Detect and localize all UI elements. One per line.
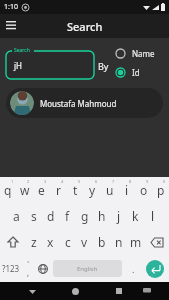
button[interactable]: x bbox=[42, 229, 59, 255]
button[interactable]: a bbox=[8, 203, 25, 229]
button[interactable]: Moustafa Mahmoud bbox=[6, 88, 163, 118]
staticText: t bbox=[73, 182, 78, 198]
staticText: c bbox=[65, 234, 71, 250]
staticText: 9 bbox=[146, 179, 149, 184]
button[interactable]: 2 bbox=[16, 177, 33, 203]
staticText: ° bbox=[27, 259, 30, 267]
button[interactable]: Back bbox=[19, 282, 46, 300]
staticText: r bbox=[56, 182, 61, 198]
staticText: 0 bbox=[163, 179, 166, 184]
staticText: u bbox=[106, 182, 114, 198]
button[interactable]: Open navigation menu bbox=[0, 15, 22, 37]
staticText: h bbox=[98, 208, 106, 224]
button[interactable]: Recent apps bbox=[105, 282, 133, 300]
staticText: b bbox=[98, 234, 106, 250]
staticText: y bbox=[89, 182, 96, 198]
staticText: o bbox=[140, 182, 148, 198]
button[interactable]: m bbox=[127, 229, 144, 255]
button[interactable]: Period bbox=[125, 255, 141, 282]
staticText: a bbox=[13, 208, 20, 224]
staticText: 7 bbox=[112, 179, 115, 184]
button[interactable]: Change keyboard language bbox=[35, 255, 50, 282]
staticText: ?123 bbox=[2, 263, 20, 274]
button[interactable]: z bbox=[25, 229, 42, 255]
staticText: q bbox=[4, 182, 12, 198]
staticText: 5 bbox=[78, 179, 81, 184]
button[interactable]: c bbox=[59, 229, 76, 255]
button[interactable]: 1 bbox=[0, 177, 16, 203]
button[interactable]: 3 bbox=[33, 177, 50, 203]
staticText: d bbox=[47, 208, 55, 224]
button[interactable]: g bbox=[76, 203, 93, 229]
staticText: . bbox=[132, 263, 135, 275]
staticText: English bbox=[77, 265, 98, 273]
button[interactable]: Backspace bbox=[144, 229, 169, 255]
staticText: l bbox=[151, 208, 155, 224]
button[interactable]: 7 bbox=[101, 177, 118, 203]
button[interactable]: Id bbox=[115, 67, 140, 78]
staticText: v bbox=[81, 234, 88, 250]
button[interactable]: f bbox=[59, 203, 76, 229]
staticText: s bbox=[31, 208, 37, 224]
button[interactable]: English bbox=[53, 260, 122, 277]
button[interactable]: b bbox=[93, 229, 110, 255]
staticText: , bbox=[27, 267, 30, 278]
staticText: k bbox=[132, 208, 139, 224]
staticText: Name bbox=[132, 48, 155, 59]
staticText: Id bbox=[132, 67, 140, 78]
button[interactable] bbox=[6, 51, 94, 79]
staticText: i bbox=[125, 182, 129, 198]
staticText: 2 bbox=[27, 179, 30, 184]
button[interactable]: Name bbox=[115, 48, 155, 59]
staticText: w bbox=[20, 182, 30, 198]
staticText: By bbox=[98, 60, 109, 72]
button[interactable]: v bbox=[76, 229, 93, 255]
staticText: x bbox=[47, 234, 54, 250]
staticText: e bbox=[38, 182, 45, 198]
staticText: 8 bbox=[129, 179, 132, 184]
button[interactable]: ?123 bbox=[0, 255, 22, 282]
staticText: jH bbox=[14, 60, 22, 71]
button[interactable]: Home bbox=[61, 282, 89, 300]
button[interactable]: j bbox=[110, 203, 127, 229]
staticText: 1:10 bbox=[4, 2, 18, 12]
button[interactable]: 4 bbox=[50, 177, 67, 203]
button[interactable]: 9 bbox=[135, 177, 152, 203]
button[interactable]: 6 bbox=[84, 177, 101, 203]
staticText: Search bbox=[14, 47, 30, 54]
staticText: m bbox=[130, 234, 142, 250]
button[interactable]: k bbox=[127, 203, 144, 229]
button[interactable]: d bbox=[42, 203, 59, 229]
button[interactable]: Switch keyboard bbox=[133, 282, 161, 300]
staticText: z bbox=[31, 234, 37, 250]
staticText: 3 bbox=[44, 179, 47, 184]
staticText: g bbox=[81, 208, 89, 224]
button[interactable]: h bbox=[93, 203, 110, 229]
staticText: 1 bbox=[11, 179, 14, 184]
staticText: p bbox=[157, 182, 165, 198]
button[interactable]: Enter bbox=[141, 255, 169, 282]
staticText: j bbox=[117, 208, 121, 224]
staticText: 6 bbox=[95, 179, 98, 184]
button[interactable]: Comma bbox=[22, 255, 35, 282]
staticText: n bbox=[115, 234, 123, 250]
button[interactable]: 5 bbox=[67, 177, 84, 203]
button[interactable]: 0 bbox=[152, 177, 169, 203]
button[interactable]: s bbox=[25, 203, 42, 229]
staticText: f bbox=[65, 208, 70, 224]
button[interactable]: n bbox=[110, 229, 127, 255]
button[interactable]: 8 bbox=[118, 177, 135, 203]
staticText: Search bbox=[67, 19, 103, 34]
button[interactable]: Shift bbox=[0, 229, 25, 255]
staticText: Moustafa Mahmoud bbox=[40, 98, 117, 109]
button[interactable]: l bbox=[144, 203, 161, 229]
staticText: 4 bbox=[61, 179, 64, 184]
